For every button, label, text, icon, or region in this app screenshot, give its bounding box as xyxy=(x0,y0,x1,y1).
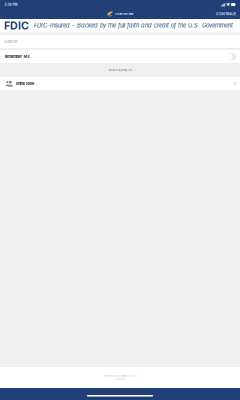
button[interactable]: Remember Me xyxy=(227,53,236,60)
staticText: User ID xyxy=(4,39,17,44)
staticText: CONTINUE xyxy=(216,12,236,16)
staticText: Remember Me xyxy=(4,54,29,59)
staticText: 2:39 PM xyxy=(4,3,17,6)
staticText: Privacy Policy xyxy=(115,378,125,380)
staticText: FDIC-Insured - Backed by the full faith … xyxy=(34,22,233,29)
staticText: Golden State Bank xyxy=(115,13,133,15)
button[interactable]: User ID xyxy=(0,35,240,48)
staticText: © 2024 Golden State Bank. All rights res… xyxy=(103,375,136,377)
staticText: Enroll Now xyxy=(16,81,34,86)
button[interactable]: Privacy Policy xyxy=(115,378,125,380)
button[interactable]: Enroll Now xyxy=(0,77,240,90)
staticText: Trouble signing in? xyxy=(108,68,131,71)
button[interactable]: CONTINUE xyxy=(214,10,238,18)
staticText: FDIC xyxy=(4,19,29,32)
button[interactable]: Trouble signing in? xyxy=(0,63,240,77)
